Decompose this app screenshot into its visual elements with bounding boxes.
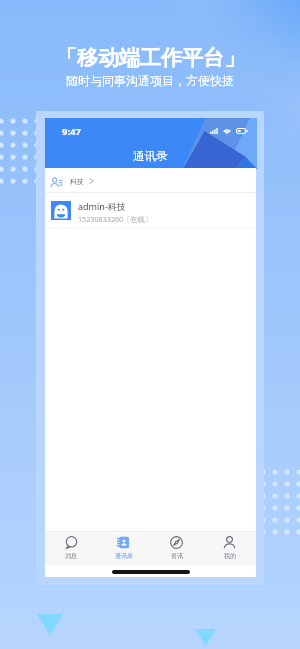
staticText: 「移动端工作平台」 (56, 45, 245, 71)
staticText: admin-科技 (78, 200, 126, 212)
staticText: 我的 (224, 552, 236, 560)
staticText: 消息 (65, 552, 77, 560)
button[interactable]: Profile (203, 532, 256, 565)
button[interactable]: Messages (45, 532, 97, 565)
staticText: 15230833260〔在线〕 (78, 214, 152, 224)
button[interactable]: 科技 (45, 168, 256, 192)
staticText: 通讯录 (115, 552, 133, 560)
button[interactable]: News (150, 532, 203, 565)
staticText: 9:47 (62, 125, 81, 138)
staticText: 通讯录 (133, 149, 168, 163)
button[interactable]: Contacts (97, 532, 150, 565)
staticText: 随时与同事沟通项目，方便快捷 (66, 73, 234, 88)
staticText: 科技 (70, 177, 84, 186)
staticText: 资讯 (171, 552, 183, 560)
button[interactable]: admin-科技 (45, 193, 256, 228)
